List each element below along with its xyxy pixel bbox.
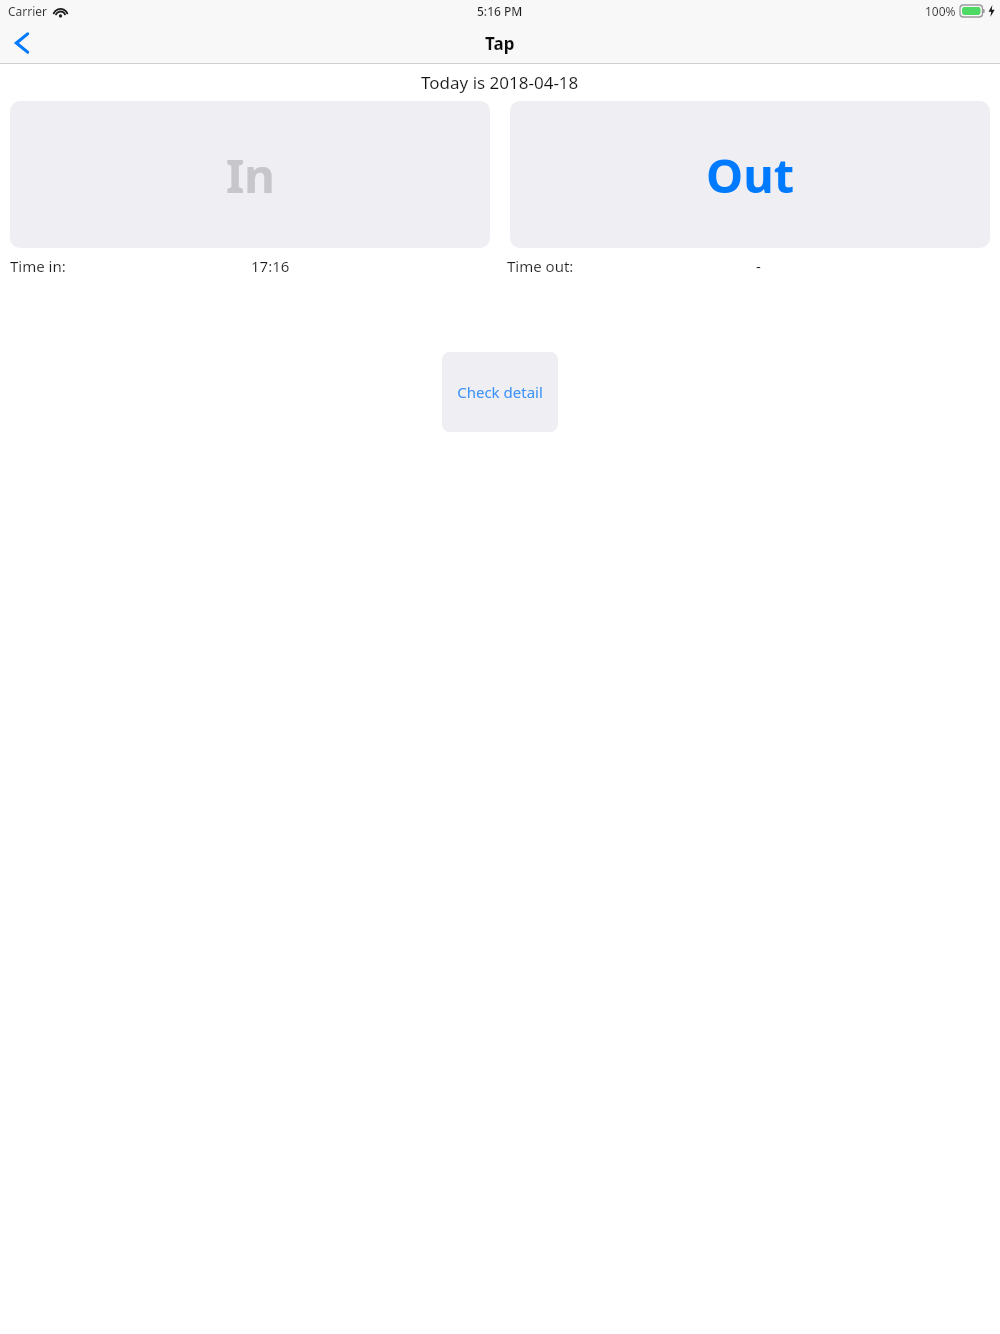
button[interactable]: In <box>10 101 490 248</box>
staticText: - <box>756 256 761 276</box>
staticText: 100% <box>925 3 956 19</box>
staticText: Today is 2018-04-18 <box>421 71 579 94</box>
staticText: Time out: <box>507 256 574 276</box>
staticText: 5:16 PM <box>477 3 523 19</box>
button[interactable]: Out <box>510 101 990 248</box>
staticText: Tap <box>485 32 515 55</box>
staticText: In <box>226 143 275 207</box>
staticText: Check detail <box>457 382 543 402</box>
button[interactable]: Back <box>0 22 44 64</box>
staticText: Out <box>706 143 795 207</box>
staticText: 17:16 <box>251 256 290 276</box>
staticText: Carrier <box>8 3 48 19</box>
staticText: Time in: <box>10 256 66 276</box>
button[interactable]: Check detail <box>442 352 558 432</box>
